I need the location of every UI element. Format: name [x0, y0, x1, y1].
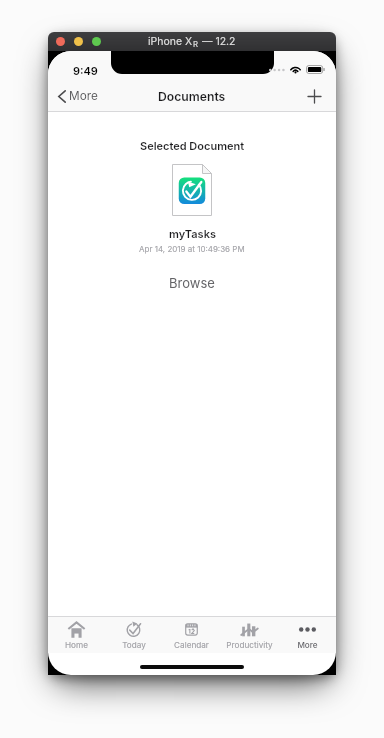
button[interactable]: Add document: [296, 79, 336, 114]
staticText: Browse: [169, 275, 215, 291]
staticText: Calendar: [174, 640, 209, 650]
button[interactable]: Minimise window: [74, 37, 83, 46]
button[interactable]: Home: [48, 617, 105, 653]
staticText: 9:49: [73, 64, 98, 77]
staticText: More: [297, 640, 318, 650]
button[interactable]: Browse: [155, 272, 229, 294]
button[interactable]: Zoom window: [92, 37, 101, 46]
staticText: Apr 14, 2019 at 10:49:36 PM: [139, 244, 245, 254]
button[interactable]: More: [278, 617, 336, 653]
staticText: iPhone X: [148, 35, 193, 48]
button[interactable]: Today: [105, 617, 162, 653]
button[interactable]: Calendar: [162, 617, 220, 653]
staticText: Home: [65, 640, 88, 650]
button[interactable]: More: [48, 84, 106, 108]
button[interactable]: Productivity: [220, 617, 278, 653]
staticText: Today: [122, 640, 146, 650]
staticText: More: [69, 89, 98, 103]
staticText: Documents: [158, 89, 226, 104]
staticText: Selected Document: [140, 139, 245, 152]
staticText: R: [193, 39, 199, 48]
staticText: Productivity: [226, 640, 273, 650]
button[interactable]: Close window: [56, 37, 65, 46]
staticText: — 12.2: [199, 35, 236, 48]
staticText: myTasks: [169, 227, 216, 240]
